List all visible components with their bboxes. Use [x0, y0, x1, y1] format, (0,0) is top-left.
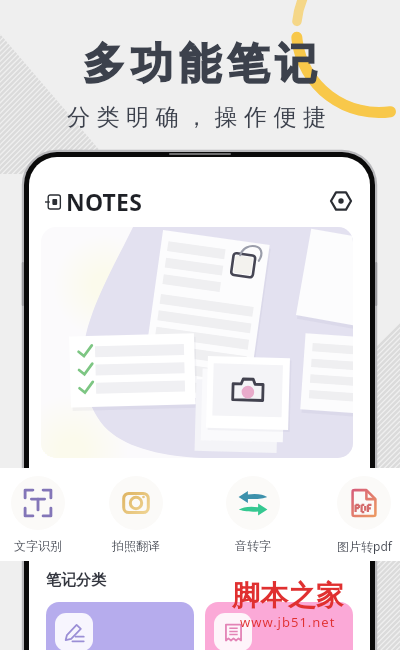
staticText: 拍照翻译 — [112, 538, 160, 553]
staticText: 音转字 — [235, 538, 271, 553]
button[interactable]: Settings — [328, 188, 354, 214]
staticText: www.jb51.net — [240, 613, 336, 631]
staticText: 图片转pdf — [337, 538, 392, 554]
button[interactable]: 音转字 — [206, 476, 300, 553]
button[interactable]: 拍照翻译 — [89, 476, 183, 553]
staticText: 多功能笔记 — [80, 38, 320, 91]
staticText: 脚本之家 — [232, 578, 344, 613]
button[interactable]: 图片转pdf — [317, 476, 400, 554]
staticText: 笔记分类 — [46, 571, 106, 590]
button[interactable] — [46, 602, 194, 650]
staticText: 文字识别 — [14, 538, 62, 553]
staticText: NOTES — [66, 186, 143, 217]
button[interactable]: 文字识别 — [0, 476, 85, 553]
button[interactable] — [205, 602, 353, 650]
button[interactable]: NOTES — [45, 186, 143, 217]
staticText: 分类明确，操作便捷 — [67, 103, 333, 132]
